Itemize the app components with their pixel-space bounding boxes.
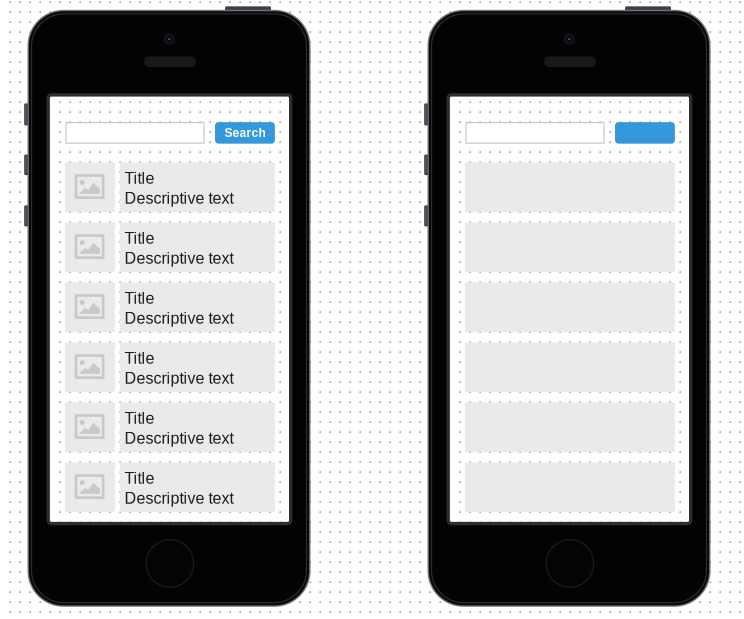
staticText: Descriptive text [124, 369, 233, 387]
staticText: Descriptive text [124, 309, 233, 327]
button[interactable]: Title [65, 462, 275, 512]
staticText: Title [124, 289, 154, 307]
button[interactable]: Title [65, 162, 275, 212]
staticText: Title [124, 169, 154, 187]
staticText: Title [124, 469, 154, 487]
staticText: Title [124, 409, 154, 427]
staticText: Descriptive text [124, 489, 233, 507]
staticText: Title [124, 349, 154, 367]
button[interactable]: Title [65, 282, 275, 332]
staticText: Descriptive text [124, 189, 233, 207]
staticText: Descriptive text [124, 429, 233, 447]
button[interactable]: Title [65, 402, 275, 452]
staticText: Descriptive text [124, 249, 233, 267]
button[interactable]: Search [215, 122, 275, 144]
button[interactable] [615, 122, 675, 144]
staticText: Search [224, 126, 265, 140]
button[interactable]: Title [65, 342, 275, 392]
button[interactable]: Title [65, 222, 275, 272]
staticText: Title [124, 229, 154, 247]
